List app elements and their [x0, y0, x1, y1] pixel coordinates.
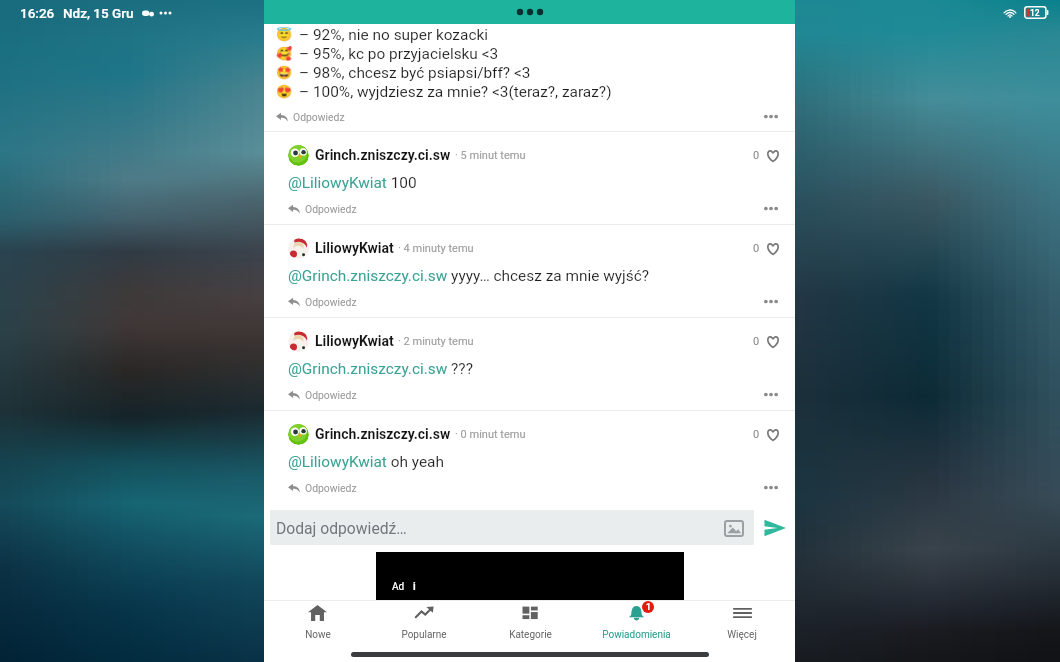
button[interactable]: Like [764, 240, 781, 257]
button[interactable]: Add image [723, 517, 745, 539]
staticText: – 100%, wyjdziesz za mnie? <3(teraz?, za… [299, 83, 612, 101]
staticText: Grinch.zniszczy.ci.sw [315, 147, 451, 163]
button[interactable]: More [749, 106, 781, 127]
staticText: 1 [646, 602, 651, 612]
staticText: 😇 [276, 27, 293, 42]
staticText: LiliowyKwiat [315, 333, 394, 349]
staticText: – 95%, kc po przyjacielsku <3 [299, 45, 499, 63]
button[interactable]: Like [764, 333, 781, 350]
button[interactable]: 1 [583, 601, 689, 645]
staticText: – 98%, chcesz być psiapsi/bff? <3 [299, 64, 531, 82]
button[interactable]: Ad [376, 552, 684, 600]
staticText: · 5 minut temu [455, 149, 526, 162]
button[interactable]: Like [764, 426, 781, 443]
staticText: @Grinch.zniszczy.ci.sw yyyy… chcesz za m… [288, 267, 650, 285]
staticText: i [413, 581, 416, 593]
button[interactable]: Więcej [689, 601, 795, 645]
button[interactable]: LiliowyKwiat [264, 318, 795, 410]
button[interactable]: More options [508, 0, 552, 24]
staticText: Ad [392, 581, 405, 593]
staticText: @LiliowyKwiat 100 [288, 174, 417, 192]
staticText: Powiadomienia [602, 629, 671, 641]
staticText: – 92%, nie no super kozacki [299, 26, 488, 44]
staticText: Odpowiedz [305, 296, 357, 308]
staticText: @LiliowyKwiat oh yeah [288, 453, 444, 471]
staticText: Ndz, 15 Gru [63, 5, 134, 21]
button[interactable]: Dodaj odpowiedź… [270, 510, 754, 545]
staticText: Kategorie [509, 629, 552, 641]
staticText: · 2 minuty temu [398, 335, 474, 348]
staticText: 0 [753, 428, 760, 441]
staticText: 16:26 [20, 5, 55, 21]
staticText: 0 [753, 149, 760, 162]
staticText: LiliowyKwiat [315, 240, 394, 256]
button[interactable]: More [749, 291, 781, 312]
staticText: Dodaj odpowiedź… [276, 519, 407, 537]
button[interactable]: Odpowiedz [276, 111, 345, 123]
button[interactable]: Grinch.zniszczy.ci.sw [264, 132, 795, 224]
button[interactable]: Odpowiedz [288, 482, 357, 494]
button[interactable]: More [749, 198, 781, 219]
button[interactable]: More [749, 477, 781, 498]
staticText: Nowe [305, 629, 331, 641]
staticText: 0 [753, 242, 760, 255]
button[interactable]: Like [764, 147, 781, 164]
staticText: 😍 [276, 84, 293, 99]
staticText: 0 [753, 335, 760, 348]
button[interactable]: Send [762, 515, 788, 541]
staticText: Popularne [401, 629, 447, 641]
staticText: @Grinch.zniszczy.ci.sw ??? [288, 360, 473, 378]
button[interactable]: Odpowiedz [288, 203, 357, 215]
button[interactable]: Odpowiedz [288, 296, 357, 308]
staticText: · 0 minut temu [455, 428, 526, 441]
button[interactable]: Kategorie [477, 601, 583, 645]
staticText: 🤩 [276, 65, 293, 80]
button[interactable]: Nowe [264, 601, 371, 645]
staticText: Odpowiedz [305, 389, 357, 401]
staticText: Odpowiedz [293, 111, 345, 123]
button[interactable]: LiliowyKwiat [264, 225, 795, 317]
button[interactable]: More [749, 384, 781, 405]
staticText: · 4 minuty temu [398, 242, 474, 255]
staticText: Grinch.zniszczy.ci.sw [315, 426, 451, 442]
staticText: Odpowiedz [305, 482, 357, 494]
button[interactable]: Grinch.zniszczy.ci.sw [264, 411, 795, 503]
button[interactable]: Popularne [371, 601, 477, 645]
staticText: 12 [1030, 8, 1040, 18]
staticText: Więcej [727, 629, 757, 641]
staticText: Odpowiedz [305, 203, 357, 215]
staticText: 🥰 [276, 46, 293, 61]
button[interactable]: Odpowiedz [288, 389, 357, 401]
